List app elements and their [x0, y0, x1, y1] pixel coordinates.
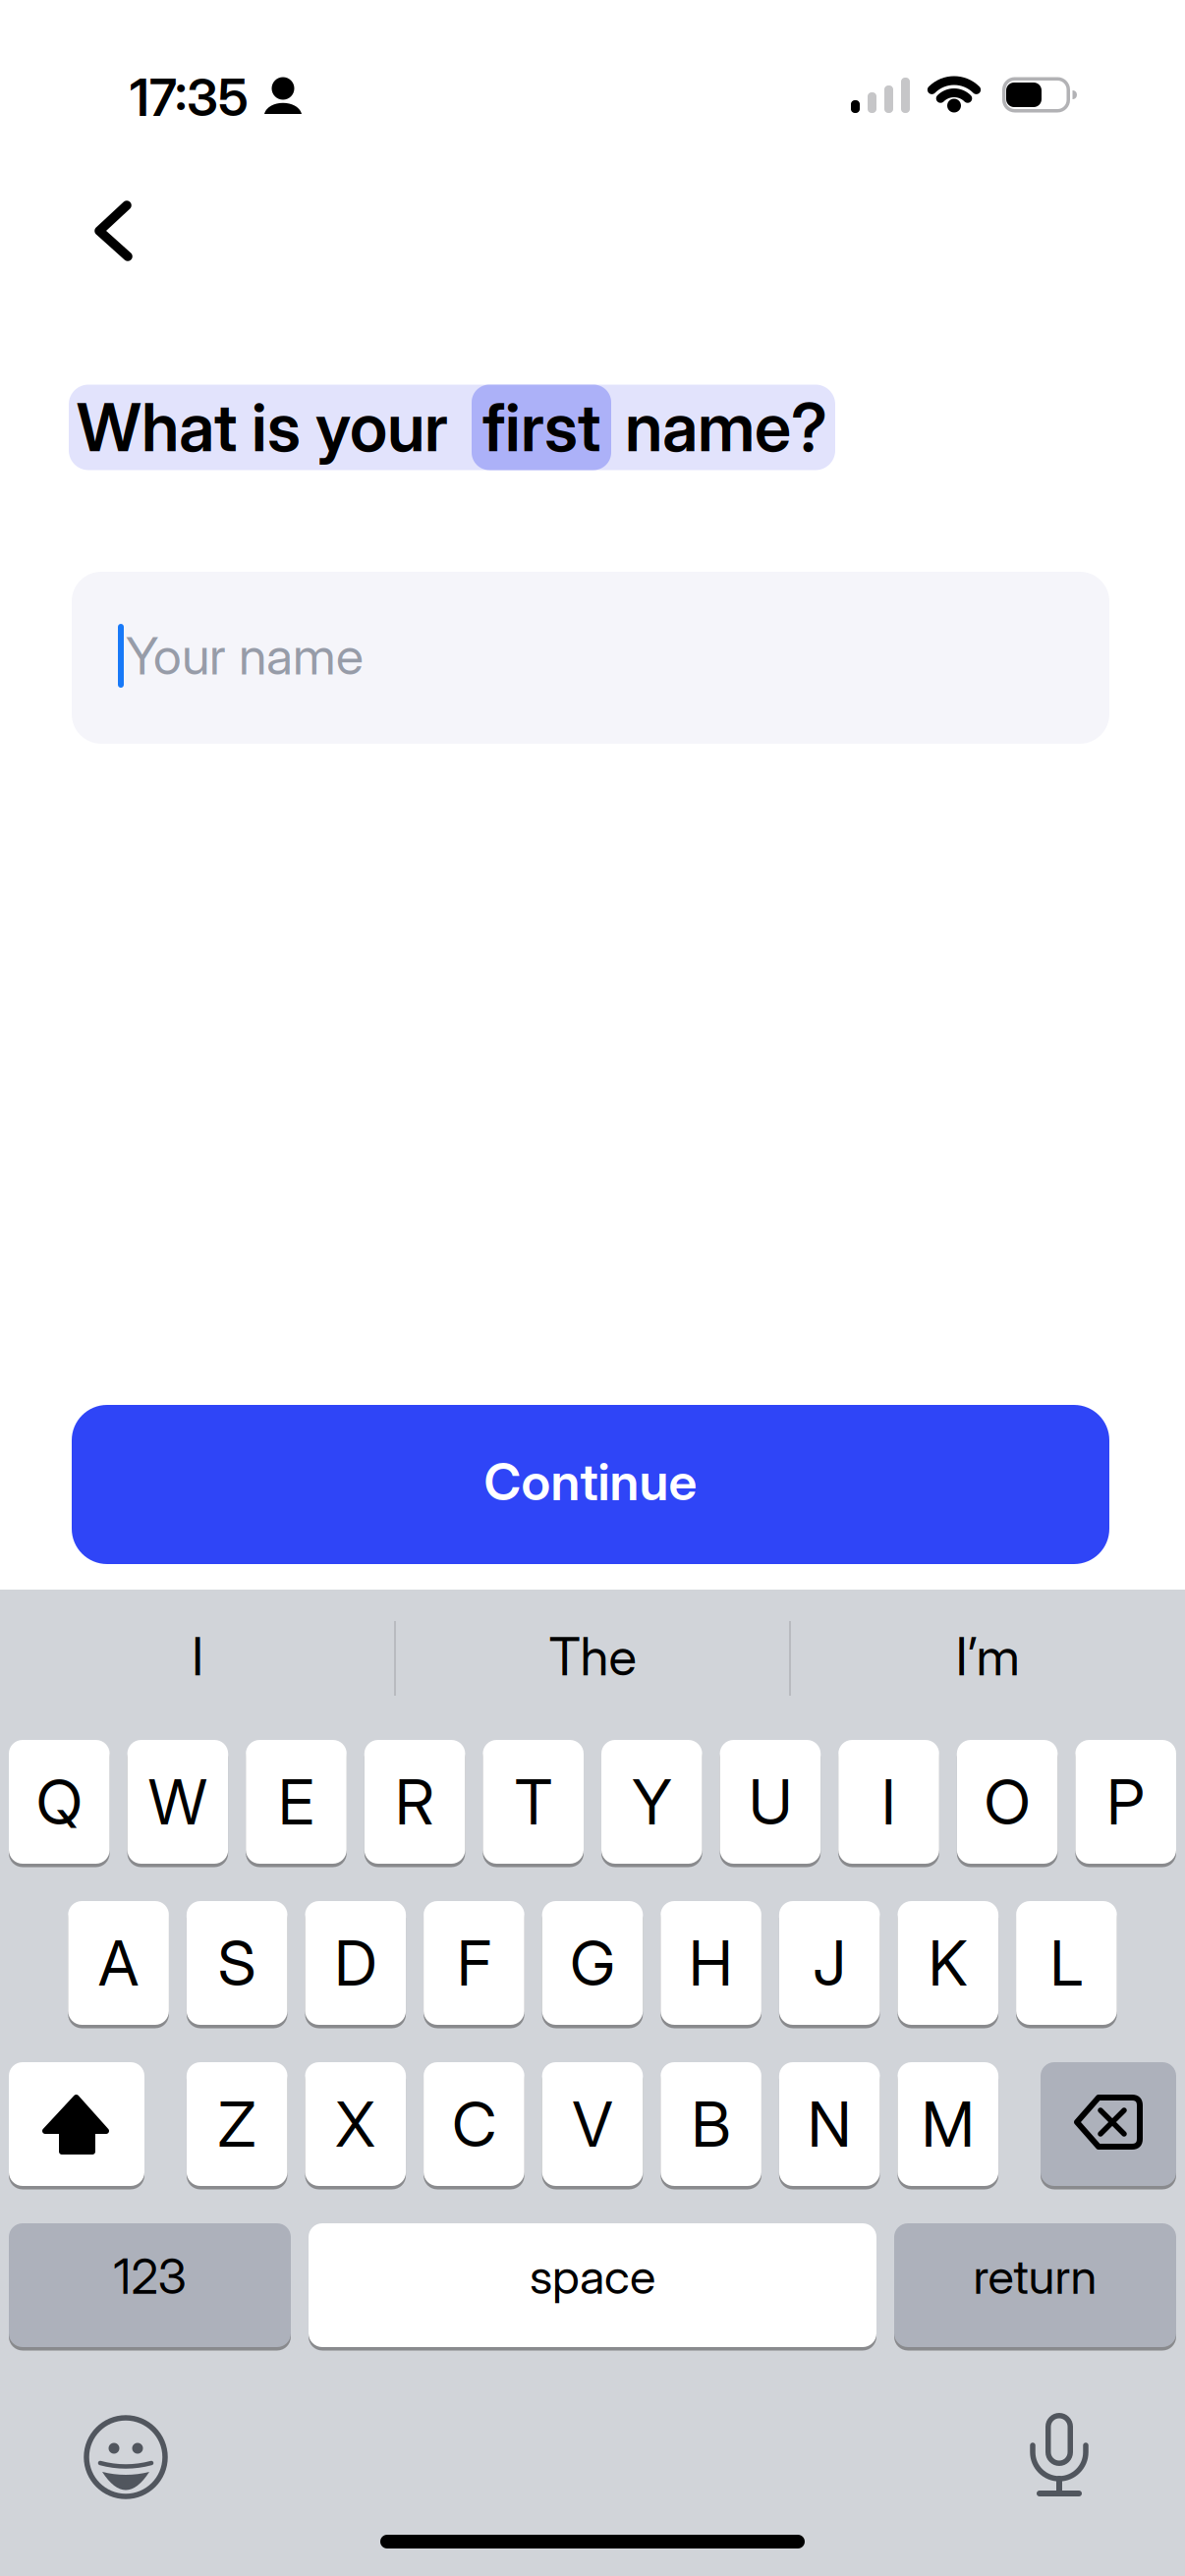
staticText: I: [881, 1764, 896, 1839]
button[interactable]: Z: [187, 2062, 287, 2186]
staticText: U: [749, 1764, 792, 1839]
staticText: 17:35: [130, 66, 249, 128]
button[interactable]: return: [894, 2223, 1176, 2347]
staticText: S: [218, 1926, 256, 2000]
staticText: The: [549, 1625, 636, 1688]
button[interactable]: B: [661, 2062, 761, 2186]
button[interactable]: K: [898, 1901, 998, 2025]
button[interactable]: The: [406, 1600, 779, 1718]
staticText: D: [334, 1926, 377, 2000]
button[interactable]: Back: [76, 192, 164, 270]
button[interactable]: A: [68, 1901, 169, 2025]
staticText: R: [395, 1764, 434, 1839]
button[interactable]: J: [779, 1901, 880, 2025]
staticText: 123: [113, 2247, 186, 2306]
button[interactable]: L: [1016, 1901, 1117, 2025]
button[interactable]: Y: [601, 1740, 702, 1864]
staticText: V: [572, 2087, 613, 2162]
button[interactable]: S: [187, 1901, 287, 2025]
staticText: N: [807, 2087, 852, 2162]
button[interactable]: E: [246, 1740, 347, 1864]
staticText: A: [98, 1926, 139, 2000]
staticText: L: [1050, 1926, 1083, 2000]
button[interactable]: M: [898, 2062, 998, 2186]
staticText: W: [148, 1764, 207, 1839]
staticText: What is your: [77, 388, 448, 467]
staticText: K: [928, 1926, 968, 2000]
staticText: Continue: [484, 1451, 697, 1512]
button[interactable]: Delete: [1041, 2062, 1176, 2186]
button[interactable]: H: [661, 1901, 761, 2025]
staticText: Z: [218, 2087, 256, 2162]
staticText: C: [452, 2087, 496, 2162]
staticText: O: [984, 1764, 1030, 1839]
staticText: Q: [36, 1764, 82, 1839]
staticText: E: [278, 1764, 314, 1839]
staticText: B: [691, 2087, 731, 2162]
button[interactable]: 123: [9, 2223, 291, 2347]
button[interactable]: I: [11, 1600, 384, 1718]
button[interactable]: F: [424, 1901, 524, 2025]
staticText: J: [813, 1926, 846, 2000]
button[interactable]: D: [305, 1901, 406, 2025]
staticText: H: [689, 1926, 733, 2000]
button[interactable]: O: [957, 1740, 1058, 1864]
button[interactable]: space: [309, 2223, 876, 2347]
button[interactable]: W: [127, 1740, 228, 1864]
staticText: space: [530, 2247, 655, 2306]
button[interactable]: I’m: [801, 1600, 1174, 1718]
staticText: return: [973, 2247, 1097, 2306]
button[interactable]: I: [838, 1740, 939, 1864]
button[interactable]: R: [364, 1740, 465, 1864]
button[interactable]: Emoji: [82, 2413, 170, 2501]
staticText: I: [192, 1625, 203, 1688]
staticText: name?: [625, 388, 827, 467]
staticText: first: [482, 388, 600, 467]
button[interactable]: X: [305, 2062, 406, 2186]
staticText: P: [1107, 1764, 1145, 1839]
button[interactable]: Dictation: [1022, 2403, 1097, 2505]
button[interactable]: U: [720, 1740, 821, 1864]
staticText: M: [921, 2087, 975, 2162]
staticText: T: [515, 1764, 552, 1839]
button[interactable]: G: [542, 1901, 643, 2025]
staticText: Your name: [126, 625, 364, 687]
button[interactable]: T: [483, 1740, 584, 1864]
staticText: Y: [632, 1764, 671, 1839]
staticText: X: [335, 2087, 376, 2162]
button[interactable]: Your name: [72, 572, 1109, 744]
button[interactable]: N: [779, 2062, 880, 2186]
staticText: I’m: [956, 1625, 1019, 1688]
button[interactable]: Continue: [72, 1405, 1109, 1564]
button[interactable]: Shift: [9, 2062, 144, 2186]
button[interactable]: P: [1075, 1740, 1176, 1864]
staticText: G: [570, 1926, 615, 2000]
button[interactable]: Q: [9, 1740, 110, 1864]
staticText: F: [457, 1926, 491, 2000]
button[interactable]: V: [542, 2062, 643, 2186]
button[interactable]: C: [424, 2062, 524, 2186]
